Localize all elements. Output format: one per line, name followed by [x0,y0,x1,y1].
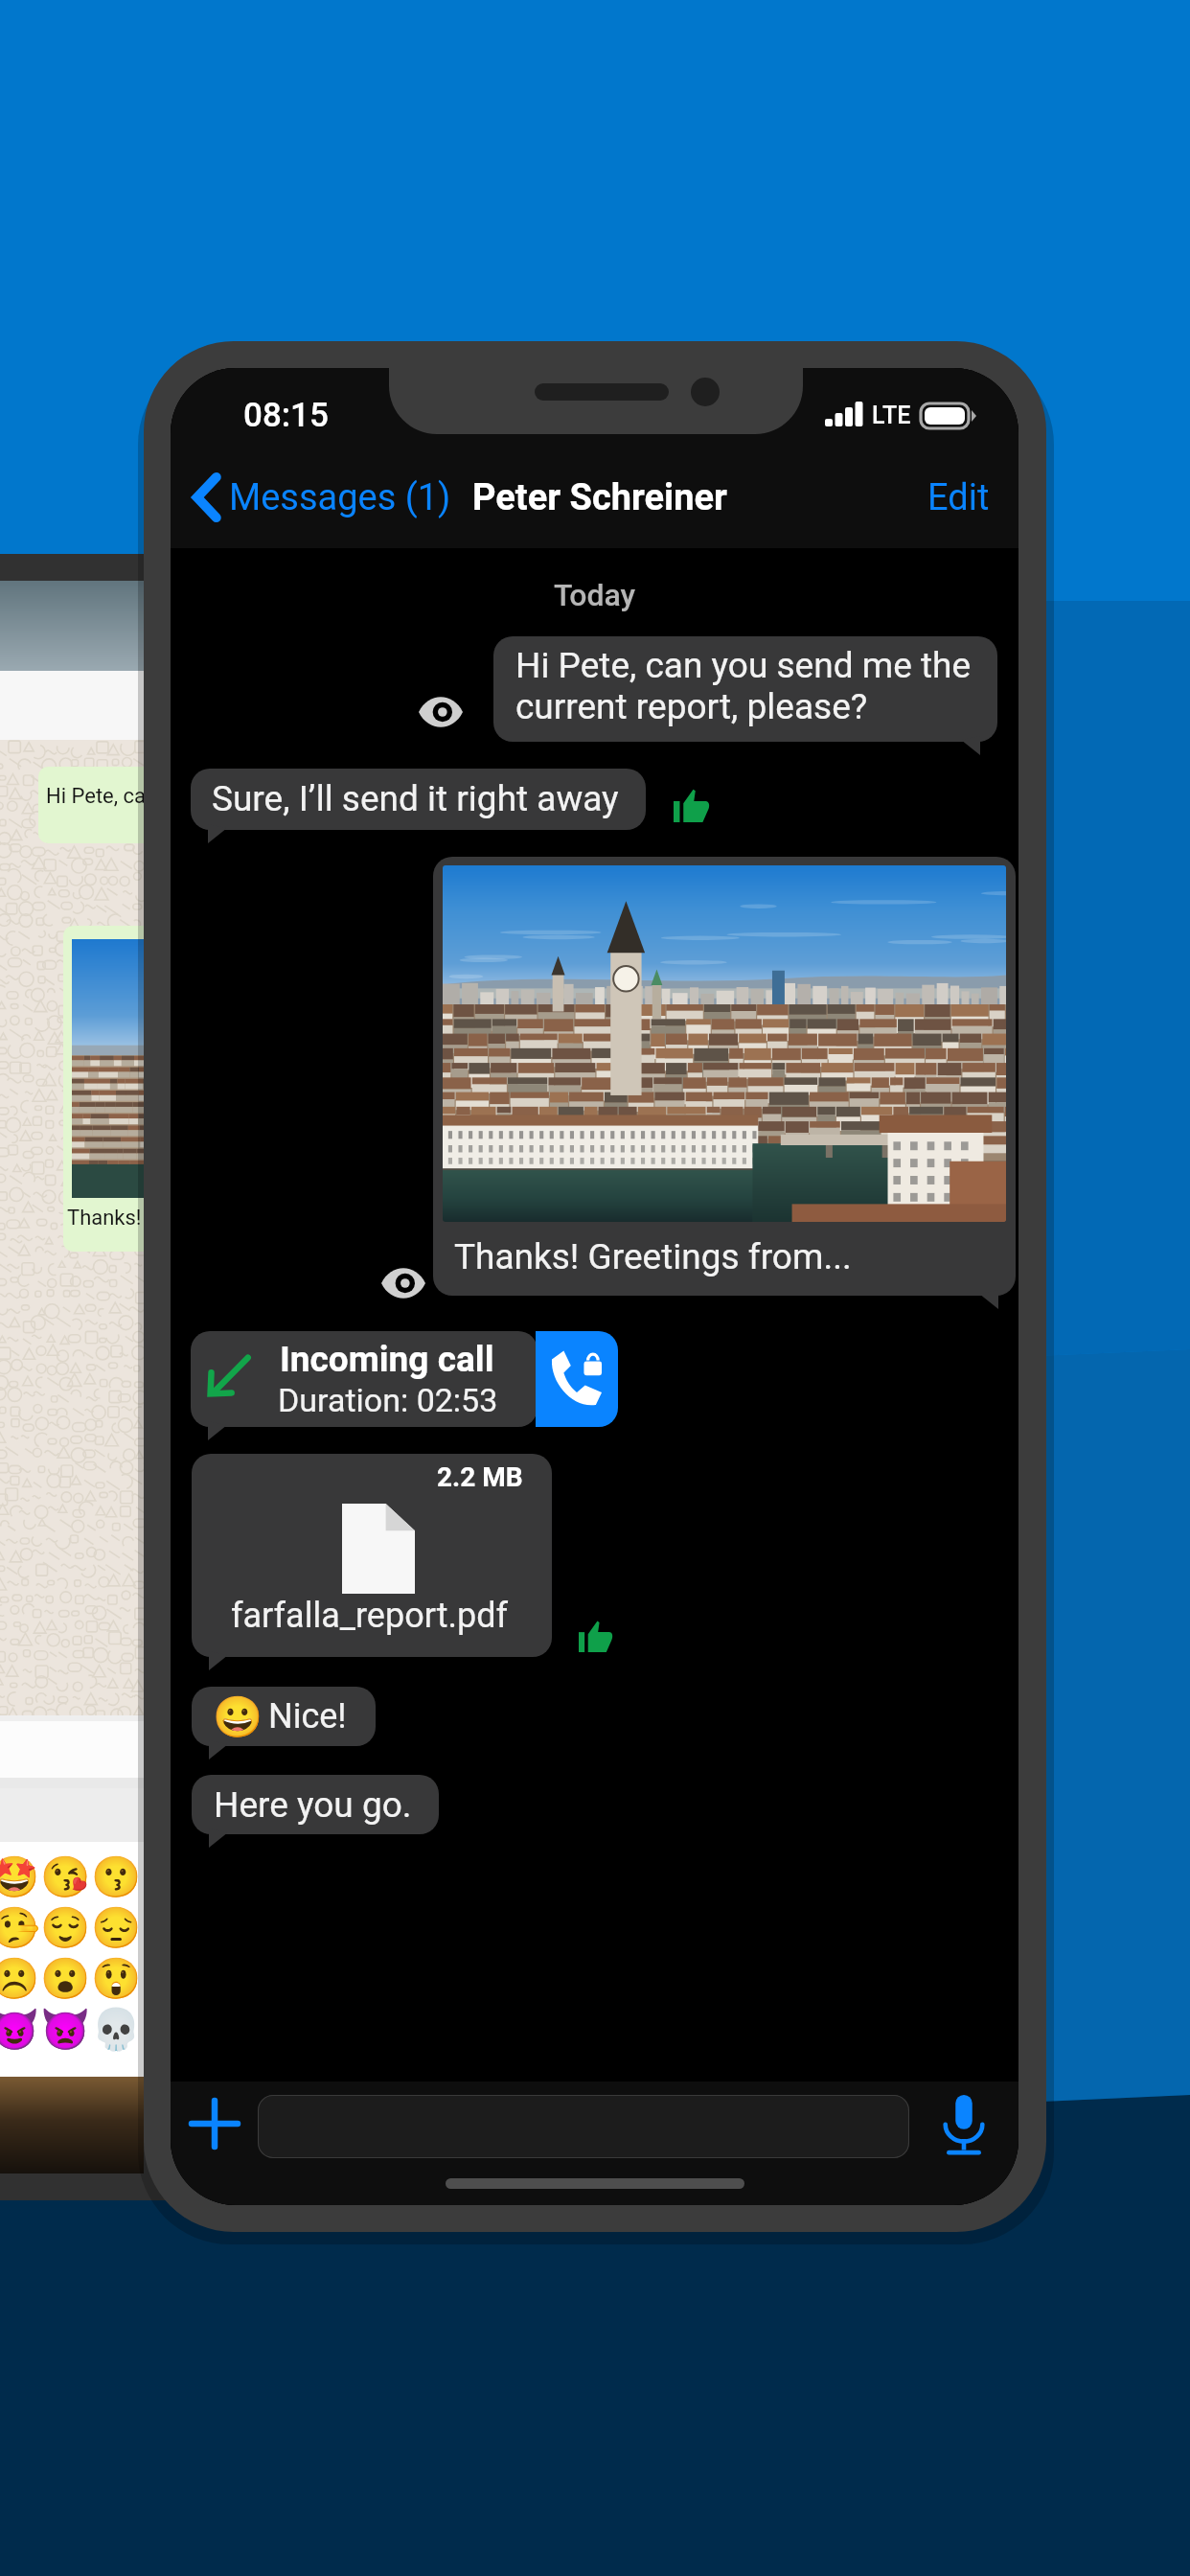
staticText: 😌 [40,1904,91,1951]
button[interactable]: Sure, I’ll send it right away [191,769,646,830]
button[interactable]: Encrypted call [536,1331,618,1427]
staticText: Incoming call [280,1339,494,1380]
button[interactable]: 2.2 MB [192,1454,552,1657]
staticText: 😀 [213,1693,263,1740]
button[interactable]: Thanks! Greetings from... [433,857,1016,1296]
button[interactable]: Incoming call [191,1331,538,1427]
staticText: Hi Pete, ca [46,784,147,809]
staticText: 😗 [91,1853,142,1900]
staticText: Peter Schreiner [472,476,727,519]
staticText: Sure, I’ll send it right away [212,778,619,819]
staticText: Thanks! G [67,1206,161,1230]
staticText: 2.2 MB [437,1461,523,1493]
staticText: 😘 [40,1853,91,1900]
staticText: ☹ [0,1955,40,2002]
staticText: Nice! [268,1696,347,1736]
staticText: 🤥 [0,1904,40,1951]
button[interactable]: 😀 [192,1687,376,1746]
button[interactable]: Add attachment [174,2081,255,2166]
staticText: Messages (1) [229,476,451,519]
button[interactable]: Edit [914,467,1003,529]
staticText: 😮 [40,1955,91,2002]
staticText: Thanks! Greetings from... [454,1236,852,1277]
staticText: Hi Pete, can you send me the [515,645,972,686]
staticText: 😈 [0,2006,40,2053]
staticText: 👿 [40,2006,91,2053]
staticText: 🤩 [0,1853,40,1900]
button[interactable]: Hi Pete, can you send me the [493,636,997,742]
button[interactable]: Here you go. [192,1775,439,1834]
staticText: 😔 [91,1904,142,1951]
staticText: farfalla_report.pdf [231,1596,509,1636]
button[interactable] [258,2095,909,2158]
button[interactable]: Messages (1) [188,467,457,528]
button[interactable]: Record voice message [922,2081,1006,2170]
staticText: Today [554,577,636,613]
staticText: Duration: 02:53 [278,1381,498,1419]
staticText: 08:15 [243,396,329,435]
staticText: 😲 [91,1955,142,2002]
staticText: Here you go. [214,1784,412,1826]
staticText: LTE [872,402,911,429]
staticText: 💀 [91,2006,142,2053]
staticText: current report, please? [515,686,868,727]
staticText: Edit [927,476,990,519]
